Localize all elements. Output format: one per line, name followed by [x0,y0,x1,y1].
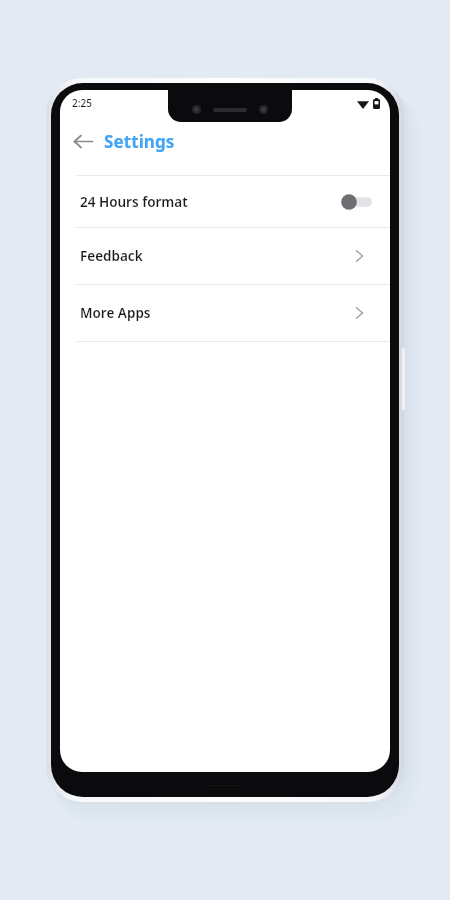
button[interactable]: Toggle 24 hours format [340,192,372,212]
other: Open More Apps [350,304,368,322]
button[interactable]: 24 Hours format [60,176,390,227]
button[interactable]: Back [66,124,100,158]
staticText: 24 Hours format [80,193,340,211]
other: Open Feedback [350,247,368,265]
staticText: Feedback [80,247,350,265]
staticText: More Apps [80,304,350,322]
button[interactable]: More Apps [60,285,390,341]
staticText: 2:25 [72,96,92,110]
button[interactable]: Feedback [60,228,390,284]
staticText: Settings [104,130,175,153]
